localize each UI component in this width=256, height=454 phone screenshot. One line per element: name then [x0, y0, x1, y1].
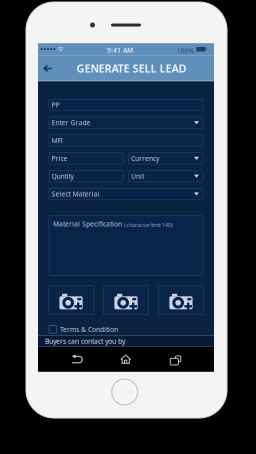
staticText: (character limit 140) — [124, 221, 173, 228]
staticText: Terms & Condition — [60, 325, 118, 334]
button[interactable]: PP — [49, 99, 203, 111]
button[interactable]: Select Material — [49, 188, 203, 200]
button[interactable]: Terms & Condition — [49, 323, 118, 336]
button[interactable]: Unit — [128, 170, 203, 182]
staticText: MFI — [52, 136, 63, 145]
button[interactable]: Quntity — [49, 170, 123, 182]
button[interactable]: Home — [108, 347, 144, 372]
staticText: Buyers can contact you by — [45, 337, 125, 346]
button[interactable]: Add photo — [158, 286, 204, 315]
staticText: 9:41 AM — [107, 46, 133, 55]
staticText: Unit — [131, 172, 144, 181]
staticText: Price — [52, 154, 68, 163]
staticText: Quntity — [52, 172, 74, 181]
staticText: GENERATE SELL LEAD — [76, 61, 186, 75]
button[interactable]: MFI — [49, 135, 203, 146]
button[interactable]: Back — [37, 57, 59, 79]
button[interactable]: Back — [59, 347, 95, 372]
button[interactable]: Add photo — [103, 286, 149, 315]
button[interactable]: Add photo — [48, 286, 94, 315]
button[interactable]: Currency — [128, 153, 203, 164]
button[interactable]: Enter Grade — [49, 117, 203, 128]
staticText: Enter Grade — [52, 118, 91, 127]
staticText: 100% — [176, 46, 194, 55]
staticText: Currency — [131, 154, 159, 163]
staticText: PP — [52, 100, 60, 109]
button[interactable]: Price — [49, 153, 123, 164]
staticText: Material Specification — [53, 219, 122, 228]
staticText: Select Material — [52, 189, 100, 198]
button[interactable]: Recent apps — [156, 347, 192, 372]
button[interactable]: Material Specification — [49, 215, 203, 275]
